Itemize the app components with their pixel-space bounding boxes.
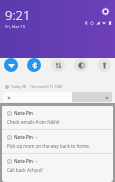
button[interactable]: Wi-Fi (4, 58, 18, 72)
staticText: Check emails from Nikhil (7, 119, 60, 125)
staticText: Note Pin (14, 158, 33, 164)
button[interactable]: Bluetooth (27, 58, 41, 72)
staticText: Pick up mom on the way back to home. (7, 143, 90, 149)
button[interactable]: Note Pin (2, 130, 113, 153)
staticText: Note Pin (14, 134, 33, 140)
button[interactable]: Brightness (3, 92, 112, 102)
button[interactable]: Today 0B (0, 82, 115, 91)
staticText: Note Pin (14, 110, 33, 116)
staticText: Call back Achyut! (7, 167, 43, 173)
button[interactable]: Note Pin (2, 106, 113, 129)
staticText: Today 0B (11, 84, 26, 89)
button[interactable]: Settings (100, 6, 111, 17)
staticText: Fri, Mar 15 (5, 24, 26, 29)
button[interactable]: Mobile data (51, 58, 65, 72)
button[interactable]: Auto rotate (74, 58, 88, 72)
button[interactable]: Flashlight (97, 58, 111, 72)
staticText: 9:21 (5, 6, 31, 24)
button[interactable]: Note Pin (2, 154, 113, 182)
staticText: This month 11.1MB (30, 84, 62, 89)
